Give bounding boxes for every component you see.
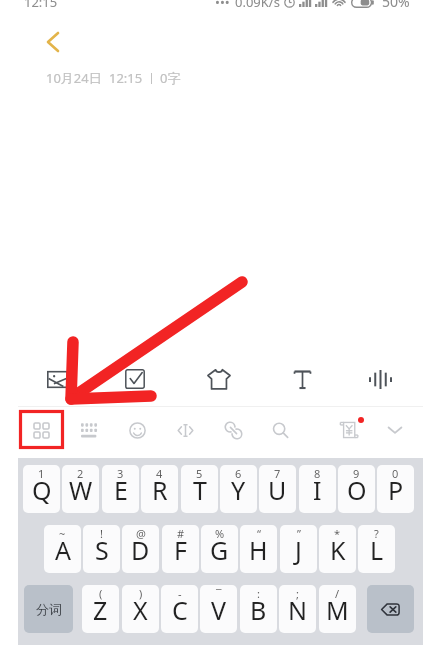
staticText: G: [210, 533, 229, 567]
button[interactable]: Back: [34, 23, 72, 61]
staticText: B: [250, 593, 267, 627]
staticText: A: [55, 533, 71, 567]
staticText: (: [99, 586, 103, 601]
staticText: 分词: [36, 601, 62, 617]
staticText: O: [347, 473, 367, 507]
staticText: C: [172, 593, 188, 627]
staticText: %: [215, 526, 225, 541]
staticText: ;: [296, 586, 299, 601]
staticText: S: [95, 533, 109, 567]
staticText: *: [334, 526, 341, 541]
button[interactable]: Backspace: [367, 585, 414, 633]
button[interactable]: ?: [358, 525, 395, 573]
staticText: 7: [274, 466, 281, 481]
button[interactable]: %: [201, 525, 238, 573]
staticText: 10月24日: [46, 69, 102, 87]
staticText: 5: [196, 466, 203, 481]
button[interactable]: 1: [23, 465, 60, 513]
staticText: W: [69, 473, 93, 507]
staticText: Q: [32, 473, 52, 507]
staticText: ): [139, 586, 143, 601]
button[interactable]: Theme: [197, 357, 241, 401]
staticText: M: [326, 593, 349, 627]
staticText: 2: [77, 466, 84, 481]
staticText: !: [100, 526, 103, 541]
button[interactable]: Keyboard layout: [68, 409, 110, 451]
button[interactable]: 2: [62, 465, 99, 513]
staticText: “: [257, 526, 261, 541]
staticText: E: [114, 473, 128, 507]
staticText: F: [174, 533, 187, 567]
staticText: 9: [353, 466, 360, 481]
staticText: 6: [235, 466, 242, 481]
staticText: ~: [59, 526, 66, 541]
staticText: ?: [374, 526, 379, 541]
staticText: U: [268, 473, 287, 507]
staticText: ”: [297, 526, 301, 541]
button[interactable]: Text format: [280, 357, 324, 401]
button[interactable]: Checklist: [113, 357, 157, 401]
button[interactable]: 9: [338, 465, 375, 513]
staticText: X: [133, 593, 148, 627]
staticText: 3: [117, 466, 124, 481]
button[interactable]: !: [83, 525, 120, 573]
staticText: @: [136, 526, 146, 541]
staticText: P: [388, 473, 404, 507]
staticText: I: [313, 473, 322, 507]
staticText: H: [249, 533, 268, 567]
button[interactable]: 3: [102, 465, 139, 513]
staticText: 4: [156, 466, 163, 481]
staticText: Z: [93, 593, 108, 627]
button[interactable]: Voice input: [358, 357, 402, 401]
button[interactable]: ¯: [200, 585, 237, 633]
button[interactable]: 5: [181, 465, 218, 513]
button[interactable]: Insert image: [35, 357, 79, 401]
staticText: T: [193, 473, 207, 507]
staticText: 0.09K/s: [235, 0, 280, 11]
staticText: -: [178, 586, 182, 601]
button[interactable]: Notes: [328, 409, 370, 451]
staticText: 12:15: [109, 69, 143, 87]
button[interactable]: #: [162, 525, 199, 573]
button[interactable]: Search: [259, 409, 301, 451]
button[interactable]: -: [161, 585, 198, 633]
button[interactable]: “: [240, 525, 277, 573]
button[interactable]: ”: [280, 525, 317, 573]
button[interactable]: 6: [220, 465, 257, 513]
button[interactable]: :: [240, 585, 277, 633]
button[interactable]: Cursor control: [164, 409, 206, 451]
button[interactable]: Clipboard: [212, 409, 254, 451]
staticText: 0: [392, 466, 399, 481]
staticText: #: [177, 526, 185, 541]
button[interactable]: 4: [141, 465, 178, 513]
staticText: 50%: [382, 0, 410, 11]
button[interactable]: *: [319, 525, 356, 573]
button[interactable]: 7: [259, 465, 296, 513]
staticText: R: [152, 473, 168, 507]
staticText: 8: [314, 466, 321, 481]
staticText: N: [288, 593, 308, 627]
staticText: J: [295, 533, 302, 567]
button[interactable]: ): [122, 585, 159, 633]
button[interactable]: 0: [377, 465, 414, 513]
button[interactable]: Panels: [20, 409, 62, 451]
button[interactable]: @: [122, 525, 159, 573]
staticText: 12:15: [24, 0, 58, 11]
button[interactable]: /: [319, 585, 356, 633]
button[interactable]: Collapse keyboard: [374, 409, 416, 451]
button[interactable]: ;: [279, 585, 316, 633]
button[interactable]: (: [82, 585, 119, 633]
staticText: V: [211, 593, 227, 627]
staticText: 1: [38, 466, 45, 481]
button[interactable]: Emoji: [116, 409, 158, 451]
button[interactable]: ~: [44, 525, 81, 573]
staticText: •••: [215, 0, 230, 11]
button[interactable]: 分词: [24, 585, 73, 633]
button[interactable]: 8: [299, 465, 336, 513]
staticText: L: [370, 533, 384, 567]
staticText: /: [335, 586, 340, 601]
staticText: K: [330, 533, 346, 567]
staticText: 0字: [160, 69, 181, 87]
staticText: ¯: [216, 586, 222, 601]
staticText: D: [131, 533, 150, 567]
